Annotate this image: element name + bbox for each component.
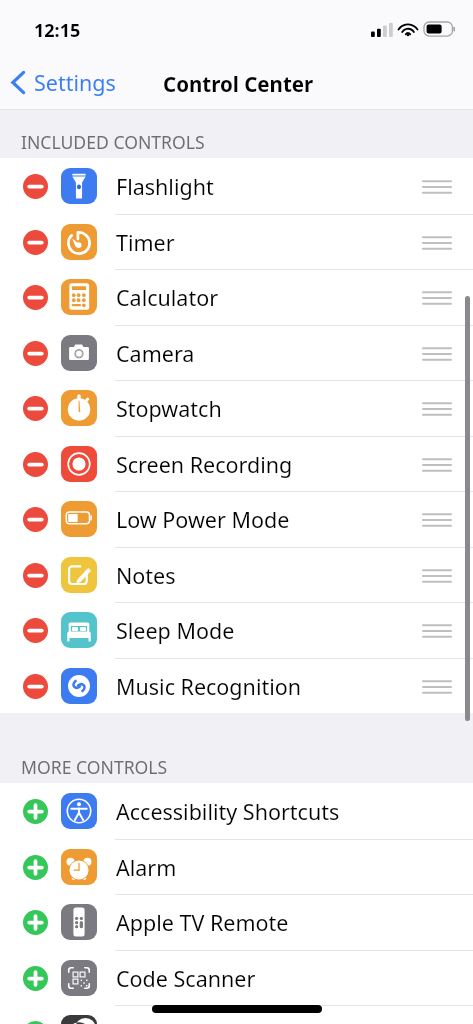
staticText: Calculator xyxy=(116,283,219,312)
staticText: Sleep Mode xyxy=(116,616,235,645)
staticText: Control Center xyxy=(163,70,314,98)
button[interactable]: Remove control xyxy=(23,452,48,477)
button[interactable]: Remove control xyxy=(0,214,473,270)
button[interactable]: Reorder control xyxy=(423,325,473,381)
button[interactable]: Remove control xyxy=(23,174,48,199)
button[interactable]: Add control xyxy=(0,839,473,895)
staticText: Stopwatch xyxy=(116,394,222,423)
staticText: Code Scanner xyxy=(116,964,256,993)
staticText: Apple TV Remote xyxy=(116,908,289,937)
button[interactable]: Add control xyxy=(0,1005,473,1024)
staticText: Flashlight xyxy=(116,172,214,201)
button[interactable]: Remove control xyxy=(23,285,48,310)
button[interactable]: Add control xyxy=(23,799,48,824)
button[interactable]: Reorder control xyxy=(423,380,473,436)
staticText: Low Power Mode xyxy=(116,505,290,534)
button[interactable]: Add control xyxy=(0,950,473,1006)
staticText: Timer xyxy=(116,228,175,257)
button[interactable]: Remove control xyxy=(23,563,48,588)
button[interactable]: Reorder control xyxy=(423,602,473,658)
button[interactable]: Remove control xyxy=(0,325,473,381)
button[interactable]: Reorder control xyxy=(423,658,473,714)
button[interactable]: Remove control xyxy=(23,341,48,366)
button[interactable]: Remove control xyxy=(23,674,48,699)
button[interactable]: Remove control xyxy=(23,396,48,421)
staticText: INCLUDED CONTROLS xyxy=(21,130,205,154)
button[interactable]: Remove control xyxy=(0,436,473,492)
button[interactable]: Remove control xyxy=(0,380,473,436)
button[interactable]: Reorder control xyxy=(423,491,473,547)
button[interactable]: Add control xyxy=(0,783,473,839)
button[interactable]: Remove control xyxy=(0,547,473,603)
button[interactable]: Add control xyxy=(23,910,48,935)
button[interactable]: Settings xyxy=(0,62,124,103)
button[interactable]: Remove control xyxy=(0,658,473,714)
button[interactable]: Remove control xyxy=(0,158,473,214)
button[interactable]: Remove control xyxy=(0,602,473,658)
button[interactable]: Reorder control xyxy=(423,158,473,214)
button[interactable]: Reorder control xyxy=(423,269,473,325)
button[interactable]: Remove control xyxy=(0,269,473,325)
staticText: Accessibility Shortcuts xyxy=(116,797,340,826)
button[interactable]: Add control xyxy=(0,894,473,950)
staticText: MORE CONTROLS xyxy=(21,755,168,779)
button[interactable]: Remove control xyxy=(23,230,48,255)
button[interactable]: Add control xyxy=(23,1021,48,1024)
button[interactable]: Remove control xyxy=(23,618,48,643)
button[interactable]: Remove control xyxy=(23,507,48,532)
staticText: Alarm xyxy=(116,853,177,882)
button[interactable]: Add control xyxy=(23,855,48,880)
button[interactable]: Add control xyxy=(23,966,48,991)
button[interactable]: Reorder control xyxy=(423,547,473,603)
button[interactable]: Reorder control xyxy=(423,436,473,492)
staticText: Notes xyxy=(116,561,176,590)
staticText: Music Recognition xyxy=(116,672,302,701)
staticText: Camera xyxy=(116,339,195,368)
button[interactable]: Remove control xyxy=(0,491,473,547)
staticText: Screen Recording xyxy=(116,450,293,479)
staticText: Settings xyxy=(34,68,116,97)
staticText: 12:15 xyxy=(34,18,81,43)
button[interactable]: Reorder control xyxy=(423,214,473,270)
